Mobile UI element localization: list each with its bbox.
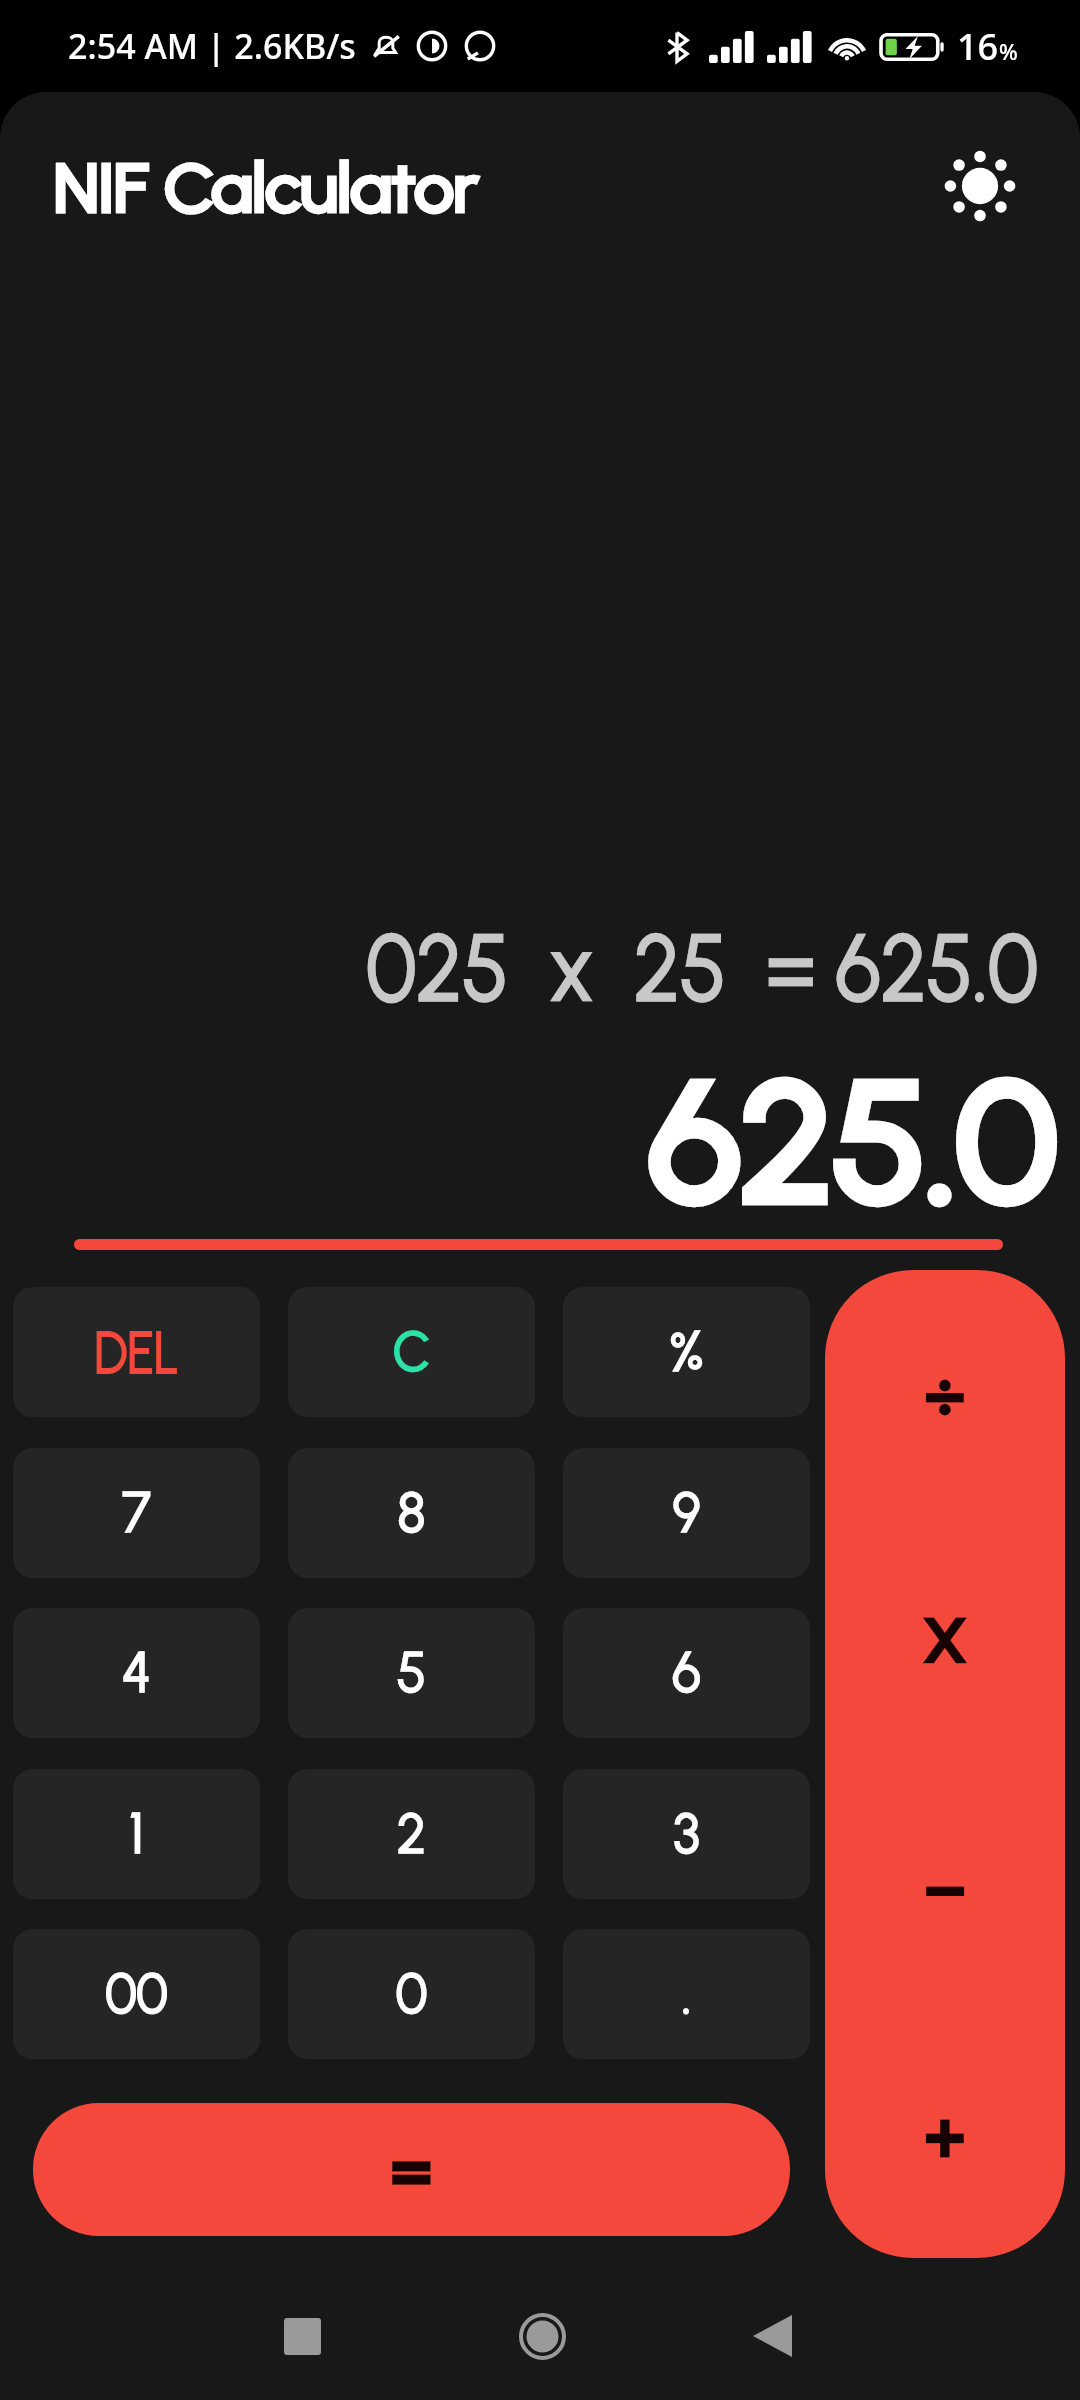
staticText: 2 [288,1800,535,1868]
staticText: 9 [563,1479,810,1547]
staticText: + [825,2095,1065,2174]
staticText: 025 x 25 = 625.0 [0,912,1038,1023]
staticText: 9 [563,1479,810,1547]
staticText: NIF Calculator [54,147,654,227]
staticText: 16 [957,22,999,71]
staticText: X [825,1606,1065,1676]
button[interactable]: Home [487,2281,597,2391]
staticText: 4 [13,1639,260,1707]
staticText: 3 [563,1800,810,1868]
staticText: NIF Calculator [54,147,654,227]
staticText: . [563,1960,810,2028]
button[interactable]: 7 [13,1448,260,1578]
button[interactable]: % [563,1287,810,1417]
button[interactable]: Recents [247,2281,357,2391]
button[interactable]: . [563,1929,810,2059]
button[interactable]: 2 [288,1769,535,1899]
staticText: % [563,1318,810,1386]
button[interactable]: C [288,1287,535,1417]
button[interactable]: 6 [563,1608,810,1738]
staticText: 3 [563,1800,810,1868]
staticText: 2 [288,1800,535,1868]
staticText: = [33,2130,790,2209]
button[interactable]: 8 [288,1448,535,1578]
staticText: 625.0 [0,1042,1057,1241]
button[interactable]: 4 [13,1608,260,1738]
staticText: C [288,1318,535,1386]
staticText: C [288,1318,535,1386]
staticText: 025 x 25 = 625.0 [0,912,1038,1023]
staticText: 6 [563,1639,810,1707]
staticText: 0 [288,1960,535,2028]
button[interactable]: 9 [563,1448,810,1578]
staticText: ÷ [825,1354,1065,1433]
staticText: 7 [13,1479,260,1547]
button[interactable]: 1 [13,1769,260,1899]
staticText: 625.0 [0,1042,1057,1241]
button[interactable]: 5 [288,1608,535,1738]
staticText: 7 [13,1479,260,1547]
staticText: − [825,1848,1065,1927]
staticText: 2:54 AM | 2.6KB/s [68,23,356,69]
button[interactable]: = [33,2103,790,2236]
staticText: % [999,36,1018,66]
staticText: 1 [13,1800,260,1868]
staticText: X [825,1606,1065,1676]
staticText: 5 [288,1639,535,1707]
staticText: 8 [288,1479,535,1547]
staticText: DEL [13,1318,260,1387]
button[interactable]: Toggle theme [930,136,1030,236]
button[interactable]: − [825,1764,1065,2011]
staticText: 1 [13,1800,260,1868]
staticText: 00 [13,1960,260,2028]
staticText: 0 [288,1960,535,2028]
staticText: 00 [13,1960,260,2028]
button[interactable]: 3 [563,1769,810,1899]
staticText: 4 [13,1639,260,1707]
staticText: ÷ [825,1354,1065,1433]
staticText: . [563,1960,810,2028]
staticText: 6 [563,1639,810,1707]
staticText: + [825,2095,1065,2174]
button[interactable]: + [825,2011,1065,2258]
staticText: 8 [288,1479,535,1547]
staticText: − [825,1848,1065,1927]
button[interactable]: 00 [13,1929,260,2059]
button[interactable]: X [825,1517,1065,1764]
staticText: = [33,2130,790,2209]
button[interactable]: Back [717,2281,827,2391]
button[interactable]: DEL [13,1287,260,1417]
button[interactable]: ÷ [825,1270,1065,1517]
staticText: DEL [13,1318,260,1387]
staticText: % [563,1318,810,1386]
button[interactable]: 0 [288,1929,535,2059]
staticText: 5 [288,1639,535,1707]
